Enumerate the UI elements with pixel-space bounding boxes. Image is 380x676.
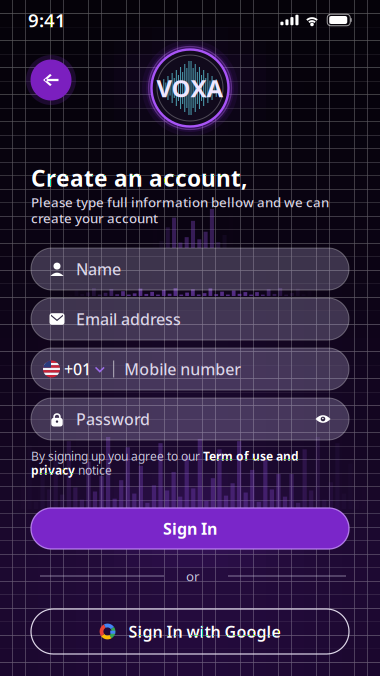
button[interactable]: Name bbox=[31, 248, 349, 290]
staticText: Mobile number bbox=[124, 358, 241, 380]
staticText: Name bbox=[76, 258, 121, 280]
staticText: create your account bbox=[31, 209, 158, 227]
button[interactable]: Term of use and bbox=[203, 448, 299, 464]
staticText: Create an account, bbox=[31, 163, 247, 193]
staticText: VOXA bbox=[156, 72, 223, 104]
staticText: Email address bbox=[76, 308, 181, 330]
button[interactable]: Email address bbox=[31, 298, 349, 340]
button[interactable]: Sign In bbox=[31, 508, 349, 549]
staticText: Please type full information bellow and … bbox=[31, 193, 329, 211]
button[interactable]: Back bbox=[26, 55, 76, 105]
staticText: privacy bbox=[31, 462, 75, 478]
staticText: +01 bbox=[64, 358, 91, 380]
staticText: Sign In with Google bbox=[128, 621, 280, 642]
button[interactable]: +01 bbox=[31, 348, 349, 390]
button[interactable]: privacy bbox=[31, 462, 75, 478]
button[interactable]: Password bbox=[31, 398, 349, 440]
staticText: notice bbox=[75, 462, 112, 478]
staticText: Password bbox=[76, 408, 150, 430]
button[interactable]: Sign In with Google bbox=[31, 609, 349, 654]
staticText: 9:41 bbox=[28, 8, 66, 32]
staticText: Term of use and bbox=[203, 448, 299, 464]
staticText: or bbox=[186, 567, 200, 585]
staticText: Sign In bbox=[163, 518, 217, 539]
staticText: By signing up you agree to our bbox=[31, 448, 203, 464]
